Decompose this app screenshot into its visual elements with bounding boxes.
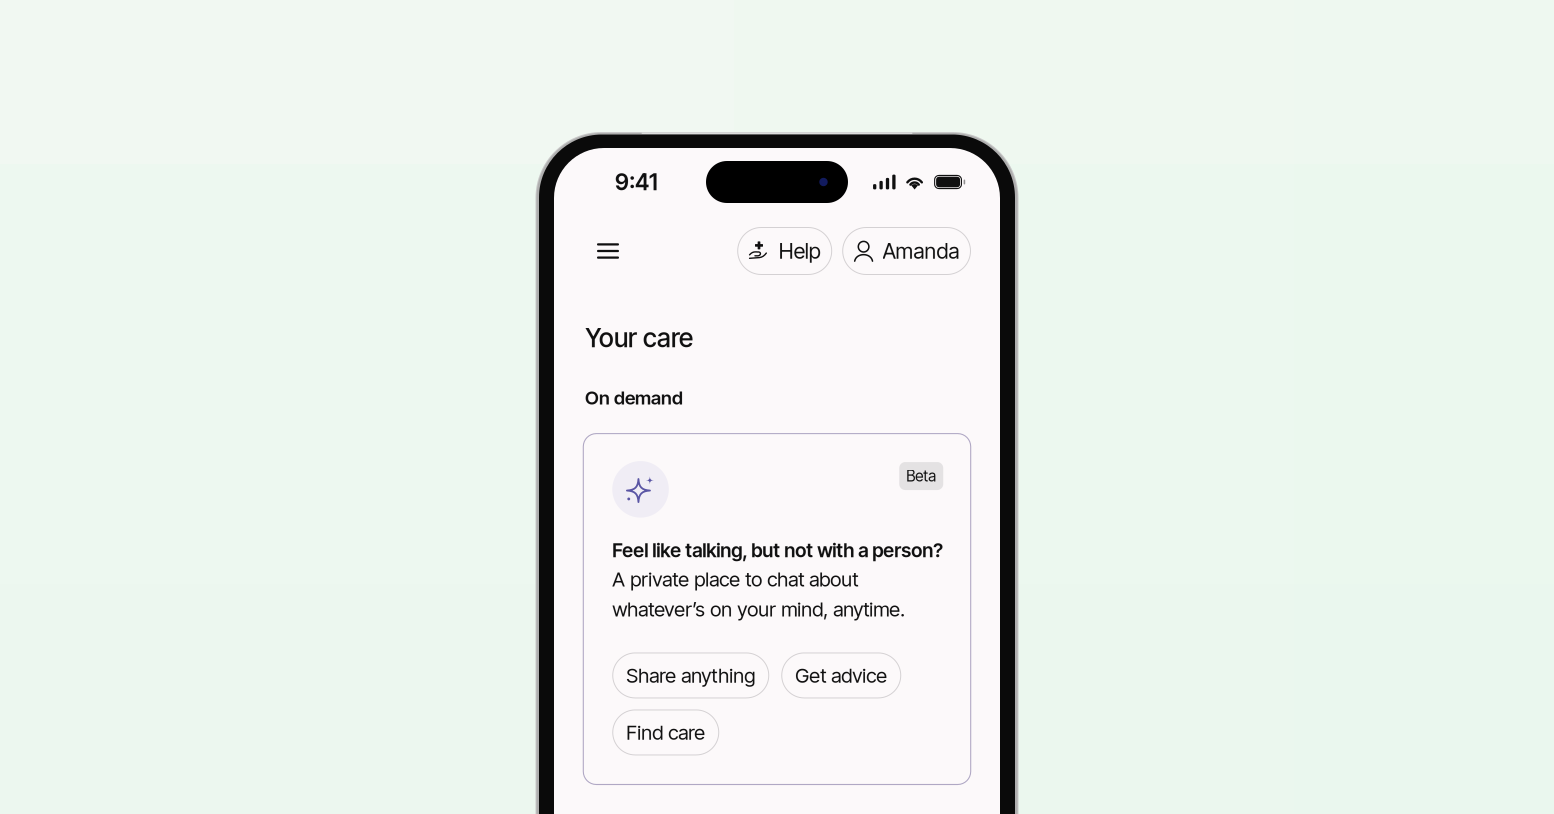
staticText: Get advice <box>795 663 887 687</box>
staticText: Feel like talking, but not with a person… <box>612 539 943 562</box>
staticText: 9:41 <box>615 168 658 196</box>
button[interactable]: Share anything <box>612 652 769 698</box>
staticText: A private place to chat about <box>612 567 858 591</box>
button[interactable]: Get advice <box>781 652 901 698</box>
button[interactable]: Help <box>737 227 832 275</box>
staticText: Share anything <box>626 663 755 687</box>
staticText: Find care <box>626 720 705 744</box>
button[interactable]: Amanda <box>842 227 971 275</box>
staticText: On demand <box>585 386 683 409</box>
button[interactable]: Find care <box>612 709 719 755</box>
staticText: Amanda <box>882 238 959 264</box>
staticText: Beta <box>906 467 936 485</box>
button[interactable]: Menu <box>575 227 630 275</box>
staticText: Help <box>779 238 821 264</box>
staticText: Your care <box>585 322 693 353</box>
staticText: whatever’s on your mind, anytime. <box>612 597 905 621</box>
